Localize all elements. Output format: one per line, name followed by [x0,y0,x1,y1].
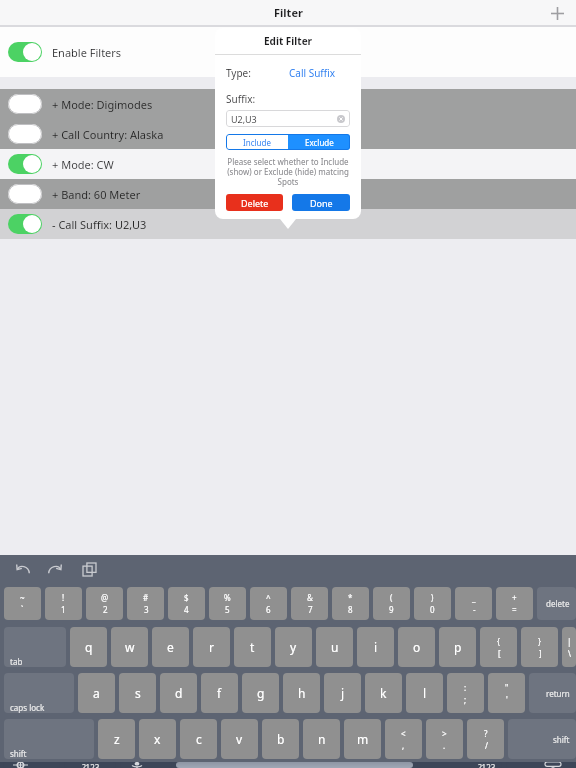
staticText: < [401,728,406,739]
staticText: ^ [266,592,271,603]
button[interactable]: Enable Filters [0,27,576,77]
button[interactable]: Call Suffix [285,64,340,82]
button[interactable]: + Mode: Digimodes [0,89,576,119]
button[interactable]: o [398,627,435,667]
button[interactable]: ^ [250,587,287,620]
button[interactable]: Copy [78,558,100,580]
button[interactable]: c [180,719,217,759]
button[interactable]: f [201,673,238,713]
button[interactable]: % [209,587,246,620]
button[interactable] [8,154,42,174]
button[interactable]: _ [455,587,492,620]
staticText: j [341,685,345,701]
button[interactable]: v [221,719,258,759]
staticText: \ [568,648,571,659]
button[interactable]: & [291,587,328,620]
button[interactable]: + [496,587,533,620]
button[interactable]: p [439,627,476,667]
button[interactable]: | [562,627,576,667]
staticText: " [505,682,509,693]
button[interactable]: + Band: 60 Meter [0,179,576,209]
button[interactable]: delete [537,587,576,620]
button[interactable]: + Mode: CW [0,149,576,179]
button[interactable]: y [275,627,312,667]
button[interactable]: Change keyboard language [3,762,60,768]
button[interactable]: .?123 [64,762,116,768]
button[interactable]: Space [176,762,413,768]
button[interactable]: shift [508,719,576,759]
button[interactable]: t [234,627,271,667]
button[interactable]: caps lock [4,673,74,713]
button[interactable]: Include [226,134,288,150]
button[interactable]: shift [4,719,94,759]
staticText: ? [484,728,488,739]
button[interactable]: g [242,673,279,713]
button[interactable]: a [78,673,115,713]
button[interactable]: Add filter [546,2,568,24]
staticText: c [196,731,202,747]
button[interactable]: r [193,627,230,667]
button[interactable]: < [385,719,422,759]
button[interactable]: m [344,719,381,759]
button[interactable]: u [316,627,353,667]
button[interactable] [8,214,42,234]
button[interactable]: ? [467,719,504,759]
button[interactable]: $ [168,587,205,620]
staticText: return [546,688,570,699]
staticText: 6 [266,604,271,615]
staticText: s [135,685,141,701]
button[interactable]: Redo [44,558,66,580]
button[interactable] [8,124,42,144]
button[interactable]: j [324,673,361,713]
button[interactable]: .?123 [417,762,502,768]
button[interactable]: w [111,627,148,667]
staticText: m [357,731,369,747]
staticText: 8 [348,604,353,615]
button[interactable]: > [426,719,463,759]
button[interactable]: Exclude [288,134,350,150]
button[interactable]: s [119,673,156,713]
button[interactable]: Dictate [120,762,172,768]
button[interactable] [8,94,42,114]
button[interactable]: z [98,719,135,759]
button[interactable] [8,184,42,204]
button[interactable]: x [139,719,176,759]
button[interactable]: ( [373,587,410,620]
button[interactable]: ! [45,587,82,620]
button[interactable]: - Call Suffix: U2,U3 [0,209,576,239]
button[interactable]: tab [4,627,66,667]
staticText: : [464,682,467,693]
button[interactable] [8,42,42,62]
button[interactable]: q [70,627,107,667]
button[interactable]: Hide keyboard [506,762,573,768]
staticText: | [567,636,572,647]
button[interactable]: * [332,587,369,620]
button[interactable]: h [283,673,320,713]
button[interactable]: Done [292,194,350,211]
button[interactable]: # [127,587,164,620]
button[interactable]: + Call Country: Alaska [0,119,576,149]
button[interactable]: U2,U3 [226,110,350,127]
button[interactable]: } [521,627,558,667]
button[interactable]: d [160,673,197,713]
button[interactable]: Clear text [337,115,345,123]
button[interactable]: Undo [12,558,34,580]
staticText: $ [184,592,189,603]
staticText: ] [539,648,542,659]
button[interactable]: l [406,673,443,713]
button[interactable]: n [303,719,340,759]
button[interactable]: : [447,673,484,713]
staticText: shift [10,748,27,759]
button[interactable]: b [262,719,299,759]
button[interactable]: { [480,627,517,667]
button[interactable]: @ [86,587,123,620]
button[interactable]: Delete [226,194,283,211]
button[interactable]: ~ [4,587,41,620]
button[interactable]: e [152,627,189,667]
button[interactable]: return [529,673,576,713]
button[interactable]: " [488,673,525,713]
button[interactable]: ) [414,587,451,620]
staticText: ( [390,592,393,603]
button[interactable]: k [365,673,402,713]
button[interactable]: i [357,627,394,667]
